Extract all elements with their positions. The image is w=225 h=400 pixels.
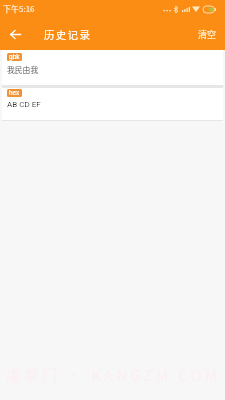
button[interactable]: Back: [0, 18, 30, 50]
staticText: 我民由我: [7, 64, 39, 75]
staticText: 清空: [198, 28, 217, 41]
staticText: 下午5:16: [3, 3, 35, 15]
staticText: 历史记录: [44, 27, 92, 42]
button[interactable]: 清空: [188, 18, 225, 50]
staticText: AB CD EF: [7, 100, 41, 109]
staticText: gbk: [9, 53, 20, 61]
staticText: hex: [9, 89, 20, 97]
button[interactable]: gbk: [2, 50, 223, 85]
button[interactable]: hex: [2, 88, 223, 120]
